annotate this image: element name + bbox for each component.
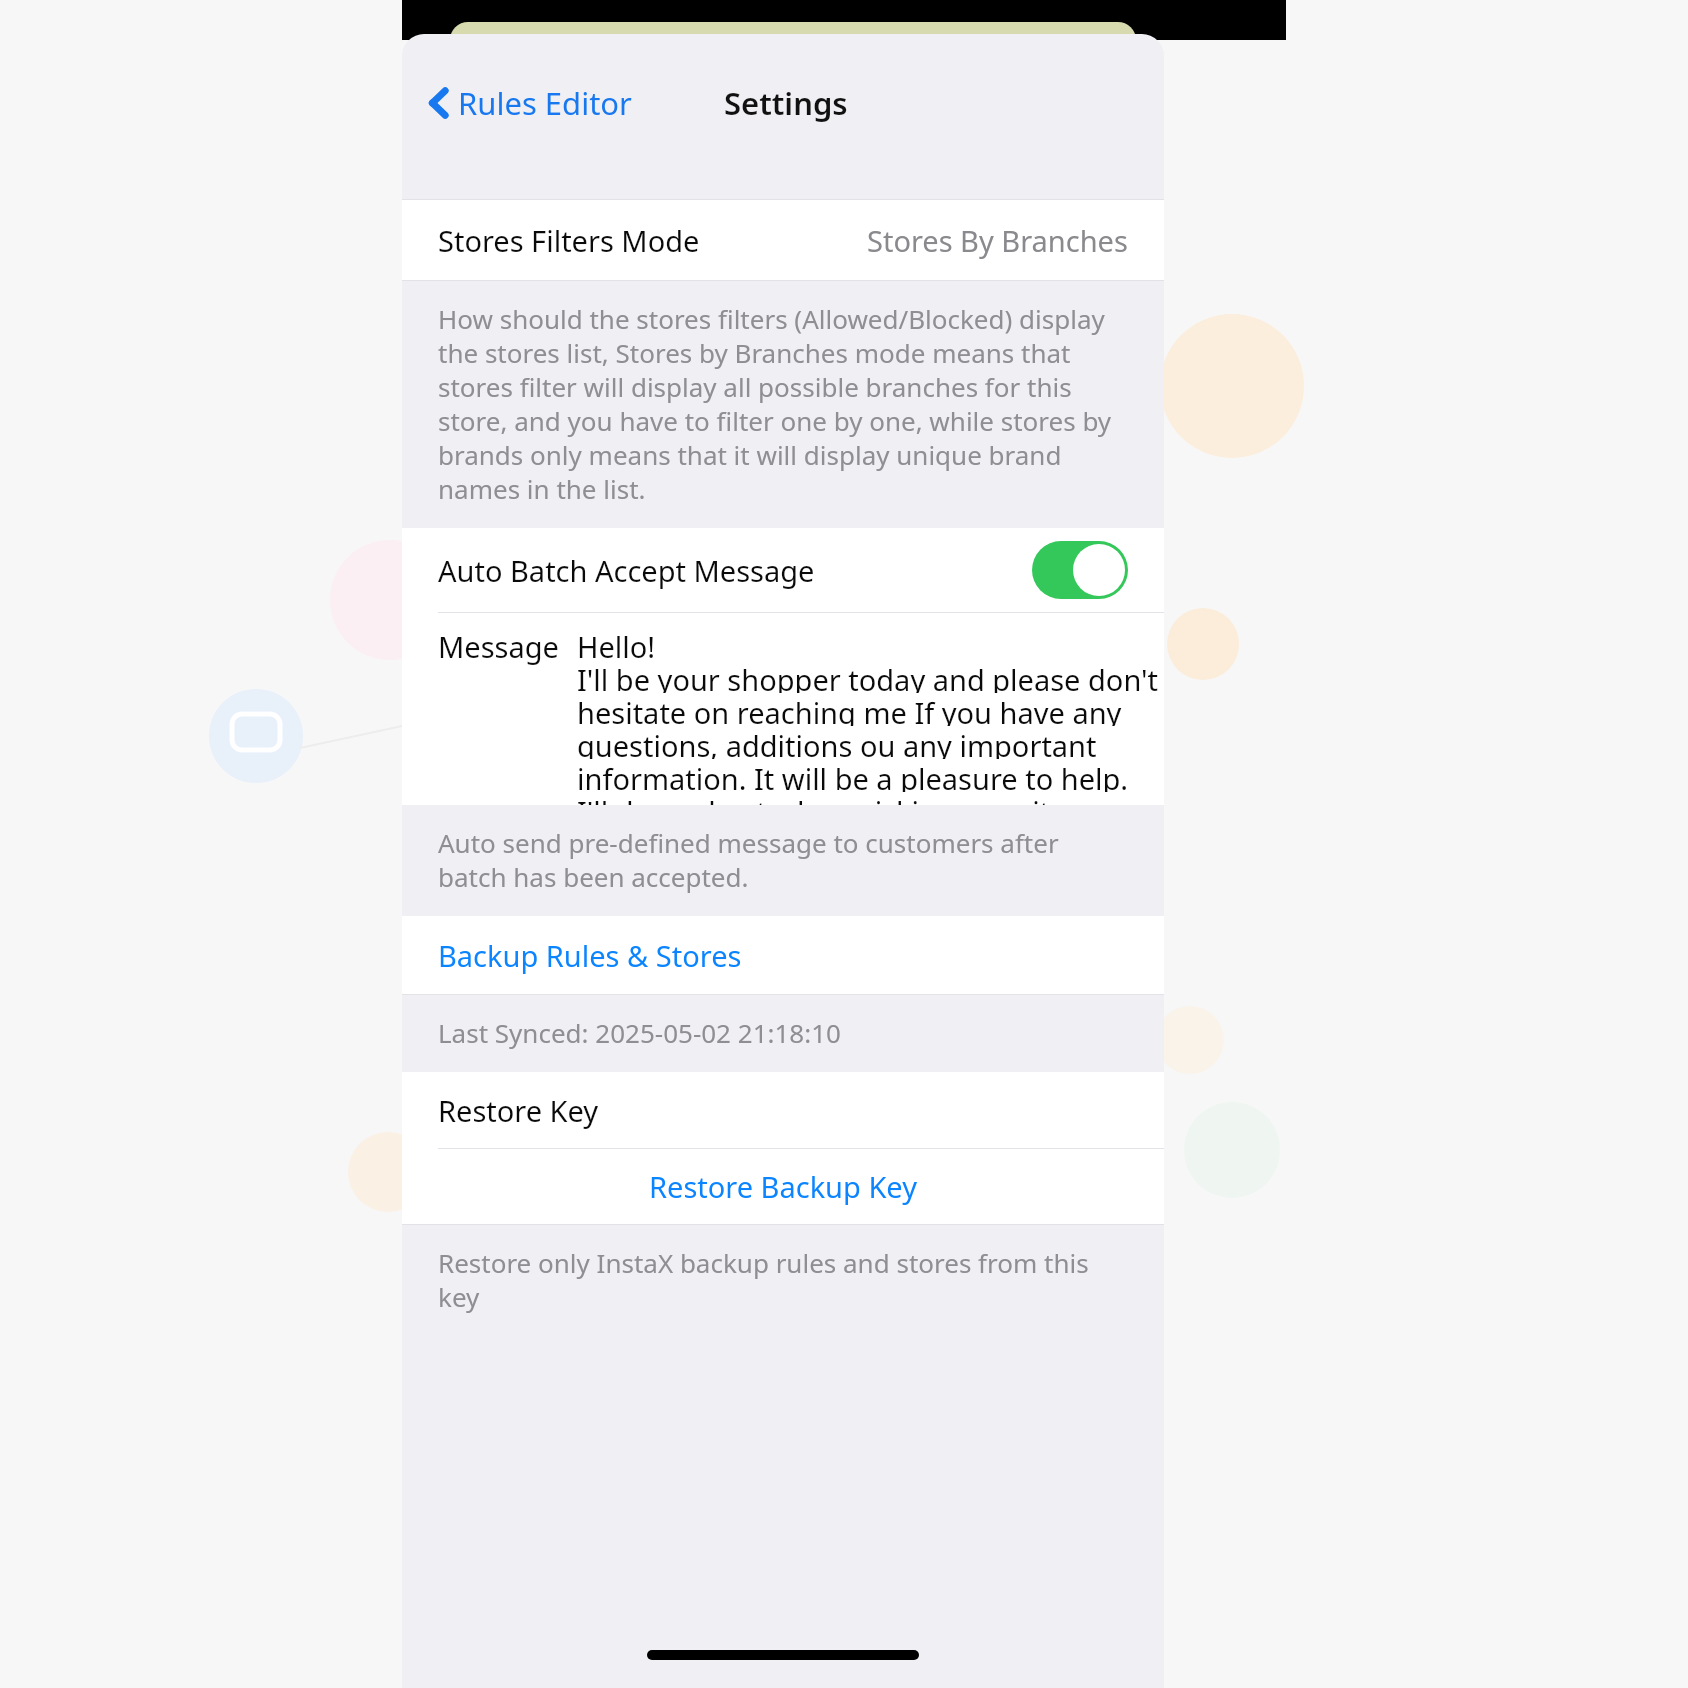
staticText: Restore Key <box>438 1091 599 1130</box>
staticText: Auto Batch Accept Message <box>438 551 815 590</box>
staticText: How should the stores filters (Allowed/B… <box>438 301 1120 506</box>
button[interactable]: Stores Filters Mode <box>402 200 1164 280</box>
button[interactable]: Backup Rules & Stores <box>402 916 1164 994</box>
staticText: Restore only InstaX backup rules and sto… <box>438 1245 1120 1314</box>
staticText: I'll be your shopper today and please do… <box>577 660 1159 693</box>
staticText: Rules Editor <box>458 82 632 124</box>
staticText: information. It will be a pleasure to he… <box>577 759 1129 792</box>
staticText: Restore Backup Key <box>649 1167 917 1206</box>
button[interactable]: Restore Backup Key <box>402 1149 1164 1224</box>
other: Auto Batch Accept Message toggle <box>1032 541 1128 599</box>
staticText: I'll do my best when picking your items … <box>577 792 1164 805</box>
staticText: Stores Filters Mode <box>438 221 700 260</box>
staticText: hesitate on reaching me If you have any <box>577 693 1122 726</box>
button[interactable]: Auto Batch Accept Message <box>402 528 1164 612</box>
button[interactable]: Restore Key <box>402 1072 1164 1148</box>
staticText: Last Synced: 2025-05-02 21:18:10 <box>438 1015 841 1050</box>
button[interactable]: Message <box>402 613 1164 805</box>
staticText: Auto send pre-defined message to custome… <box>438 825 1120 894</box>
button[interactable]: Rules Editor <box>422 78 638 128</box>
staticText: Stores By Branches <box>867 221 1128 260</box>
staticText: Message <box>438 627 559 666</box>
staticText: Hello! <box>577 627 656 660</box>
staticText: questions, additions ou any important <box>577 726 1097 759</box>
staticText: Backup Rules & Stores <box>438 936 742 975</box>
staticText: Settings <box>724 82 848 124</box>
